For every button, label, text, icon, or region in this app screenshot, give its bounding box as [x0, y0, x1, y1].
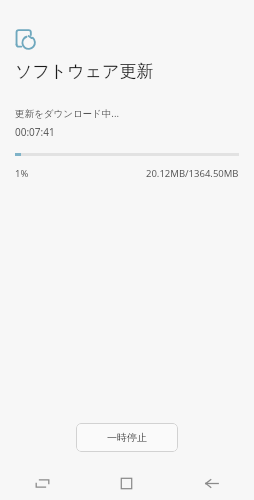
staticText: 1%	[15, 167, 29, 180]
button[interactable]: Back	[169, 466, 254, 500]
button[interactable]: Home	[84, 466, 169, 500]
staticText: 20.12MB/1364.50MB	[146, 167, 239, 180]
staticText: ソフトウェア更新	[15, 61, 154, 82]
button[interactable]: Recents	[0, 466, 84, 500]
staticText: 更新をダウンロード中...	[15, 107, 119, 120]
staticText: 一時停止	[107, 431, 147, 444]
button[interactable]: 一時停止	[76, 423, 178, 452]
staticText: 00:07:41	[15, 125, 55, 139]
